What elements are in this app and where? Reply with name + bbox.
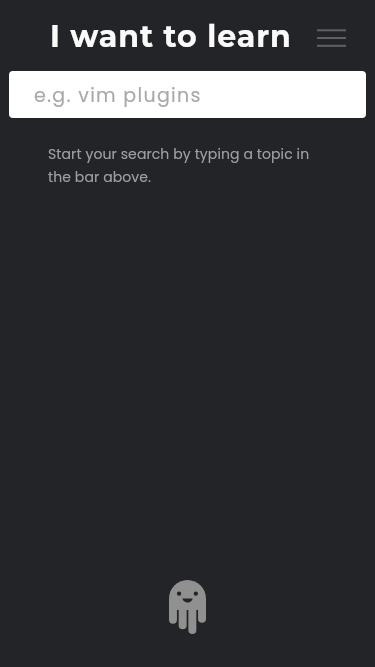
staticText: I want to learn	[50, 18, 292, 55]
button[interactable]: Menu	[314, 22, 349, 57]
staticText: Start your search by typing a topic in t…	[48, 144, 323, 187]
staticText: e.g. vim plugins	[34, 82, 202, 109]
button[interactable]: e.g. vim plugins	[9, 71, 366, 118]
